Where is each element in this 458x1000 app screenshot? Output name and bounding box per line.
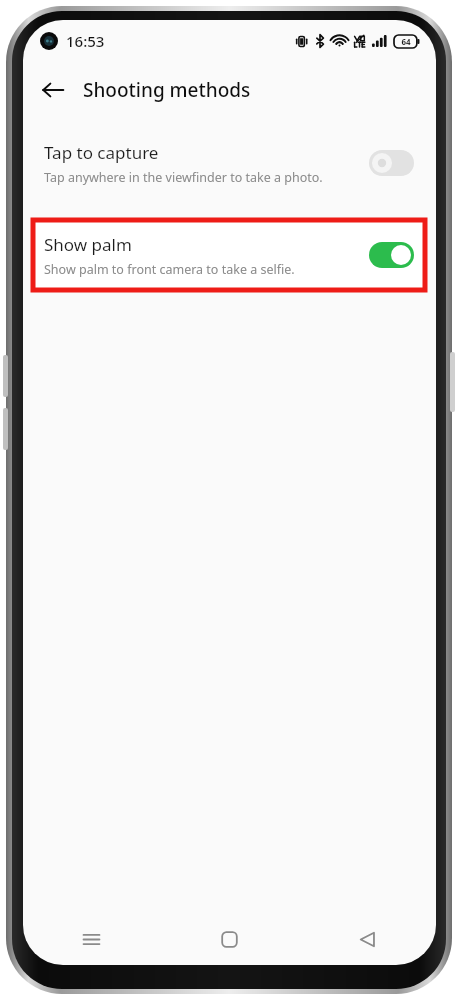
staticText: Tap to capture	[44, 141, 159, 164]
button[interactable]: Tap to capture	[23, 132, 436, 194]
button[interactable]: Back	[298, 913, 436, 965]
button[interactable]: Recent apps	[23, 913, 160, 965]
button[interactable]: Home	[160, 913, 298, 965]
staticText: Shooting methods	[83, 77, 251, 103]
staticText: Show palm	[44, 233, 132, 256]
button[interactable]: Show palm	[23, 220, 436, 290]
button[interactable]: Toggle on	[369, 242, 414, 268]
button[interactable]: Toggle off	[369, 150, 414, 176]
staticText: 64	[401, 36, 411, 47]
staticText: 16:53	[66, 31, 105, 51]
staticText: Show palm to front camera to take a self…	[44, 261, 295, 278]
staticText: Tap anywhere in the viewfinder to take a…	[44, 169, 323, 186]
button[interactable]: Back	[31, 68, 75, 112]
